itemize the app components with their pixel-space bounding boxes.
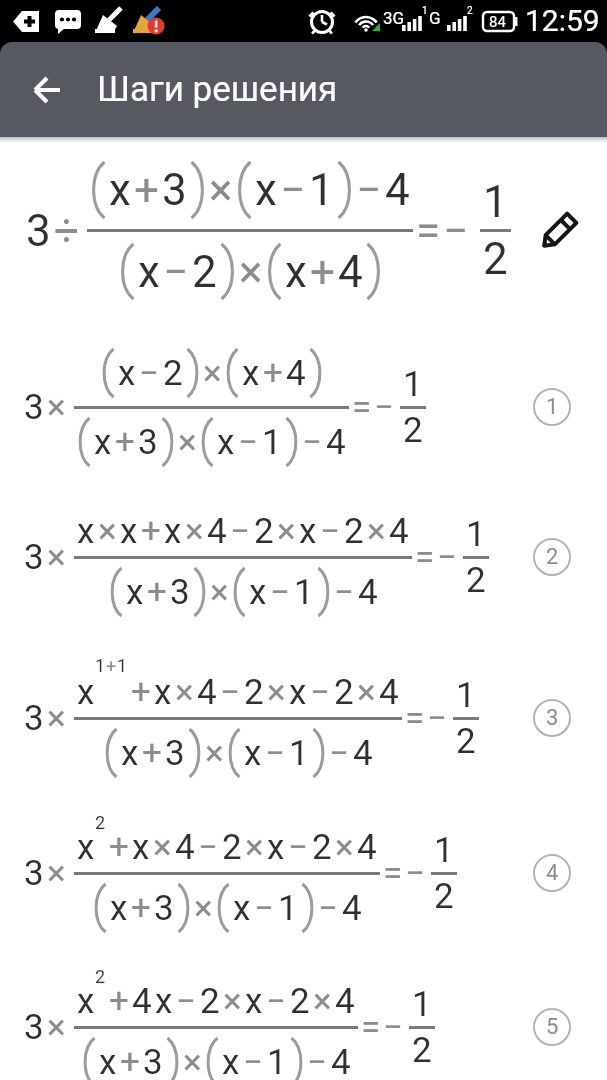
staticText: 2 — [244, 672, 264, 713]
staticText: 2 — [95, 812, 106, 833]
button[interactable]: 3 — [24, 498, 489, 617]
staticText: 1 — [309, 164, 334, 216]
staticText: x — [126, 572, 144, 613]
staticText: 4 — [389, 511, 409, 552]
button[interactable]: 1 — [533, 388, 571, 426]
staticText: − — [437, 537, 458, 578]
button[interactable]: 4 — [533, 854, 571, 892]
staticText: 4 — [353, 733, 373, 774]
staticText: − — [383, 1007, 404, 1048]
staticText: x — [155, 981, 173, 1022]
staticText: 1 — [289, 733, 309, 774]
staticText: × — [185, 511, 204, 552]
staticText: − — [318, 888, 339, 929]
staticText: x — [154, 672, 172, 713]
staticText: x — [233, 888, 251, 929]
staticText: 4 — [385, 164, 410, 216]
staticText: − — [220, 672, 241, 713]
staticText: 2 — [192, 246, 217, 298]
staticText: 1 — [278, 888, 298, 929]
staticText: 84 — [489, 13, 506, 31]
staticText: × — [47, 537, 66, 578]
staticText: × — [357, 672, 376, 713]
staticText: x — [77, 511, 95, 552]
button[interactable]: 3 — [24, 814, 457, 933]
button[interactable] — [26, 68, 70, 112]
staticText: G — [429, 8, 441, 28]
staticText: = — [383, 853, 403, 894]
staticText: 3 — [162, 164, 187, 216]
button[interactable]: 3 — [24, 348, 426, 467]
staticText: x — [132, 827, 150, 868]
staticText: 3 — [138, 422, 158, 463]
staticText: × — [47, 1007, 66, 1048]
staticText: × — [175, 672, 194, 713]
staticText: × — [210, 572, 229, 613]
staticText: x — [267, 827, 285, 868]
staticText: + — [142, 733, 162, 774]
staticText: 2 — [456, 721, 476, 762]
staticText: 4 — [358, 572, 378, 613]
staticText: 2 — [95, 966, 106, 987]
staticText: 3 — [170, 572, 190, 613]
staticText: x — [249, 572, 267, 613]
staticText: = — [416, 205, 441, 257]
staticText: + — [109, 827, 129, 868]
staticText: = — [361, 1007, 381, 1048]
staticText: x — [242, 353, 260, 394]
staticText: − — [374, 387, 395, 428]
staticText: 2 — [254, 511, 274, 552]
staticText: − — [238, 422, 259, 463]
staticText: 3 — [24, 853, 44, 894]
staticText: 4 — [207, 511, 227, 552]
staticText: × — [47, 387, 66, 428]
button[interactable]: 2 — [533, 538, 571, 576]
staticText: − — [356, 164, 382, 216]
button[interactable]: 3 — [533, 699, 571, 737]
staticText: 1 — [483, 176, 508, 228]
staticText: − — [198, 827, 219, 868]
staticText: + — [147, 572, 167, 613]
staticText: x — [299, 511, 317, 552]
staticText: × — [277, 511, 296, 552]
staticText: − — [307, 1042, 328, 1080]
staticText: + — [120, 1042, 140, 1080]
button[interactable]: 3 — [24, 968, 435, 1080]
staticText: × — [313, 981, 332, 1022]
staticText: 4 — [338, 246, 363, 298]
staticText: 4 — [335, 981, 355, 1022]
staticText: + — [115, 422, 135, 463]
button[interactable]: 5 — [533, 1008, 571, 1046]
staticText: + — [106, 655, 117, 676]
staticText: x — [120, 511, 138, 552]
staticText: 3 — [26, 205, 51, 257]
staticText: 1 — [456, 675, 476, 716]
staticText: = — [352, 387, 372, 428]
staticText: x — [289, 672, 307, 713]
staticText: x — [245, 981, 263, 1022]
staticText: x — [164, 511, 182, 552]
staticText: 2 — [412, 1030, 432, 1071]
staticText: + — [310, 246, 335, 298]
button[interactable]: 3 — [26, 161, 511, 300]
staticText: × — [194, 888, 213, 929]
staticText: 3 — [24, 387, 44, 428]
staticText: − — [254, 888, 275, 929]
staticText: − — [302, 422, 323, 463]
button[interactable] — [536, 210, 580, 254]
staticText: 12:59 — [525, 3, 600, 38]
staticText: 5 — [546, 1014, 559, 1040]
staticText: × — [178, 422, 197, 463]
staticText: 3 — [165, 733, 185, 774]
staticText: 1 — [95, 655, 106, 676]
staticText: − — [163, 246, 189, 298]
staticText: 2 — [312, 827, 332, 868]
staticText: x — [255, 164, 277, 216]
button[interactable]: 3 — [24, 659, 479, 778]
staticText: 3 — [24, 537, 44, 578]
staticText: 3 — [24, 1007, 44, 1048]
staticText: − — [329, 733, 350, 774]
staticText: 1 — [412, 984, 432, 1025]
staticText: x — [110, 888, 128, 929]
staticText: 4 — [546, 860, 559, 886]
